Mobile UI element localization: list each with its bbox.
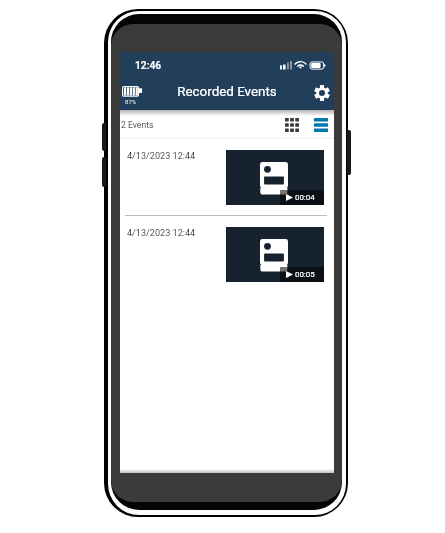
button[interactable]: 4/13/2023 12:44 (120, 139, 334, 216)
staticText: 87% (125, 98, 137, 105)
staticText: 2 Events (121, 120, 154, 130)
button[interactable]: Grid view (282, 115, 302, 134)
button[interactable]: List view (311, 115, 331, 134)
staticText: Recorded Events (177, 84, 277, 100)
staticText: 00:04 (295, 193, 315, 202)
staticText: 00:05 (295, 270, 315, 279)
button[interactable]: Battery level (120, 75, 142, 105)
staticText: 4/13/2023 12:44 (127, 228, 196, 239)
staticText: 4/13/2023 12:44 (127, 151, 196, 162)
button[interactable]: Settings (310, 81, 334, 105)
button[interactable]: 4/13/2023 12:44 (120, 216, 334, 292)
staticText: 12:46 (135, 59, 162, 71)
